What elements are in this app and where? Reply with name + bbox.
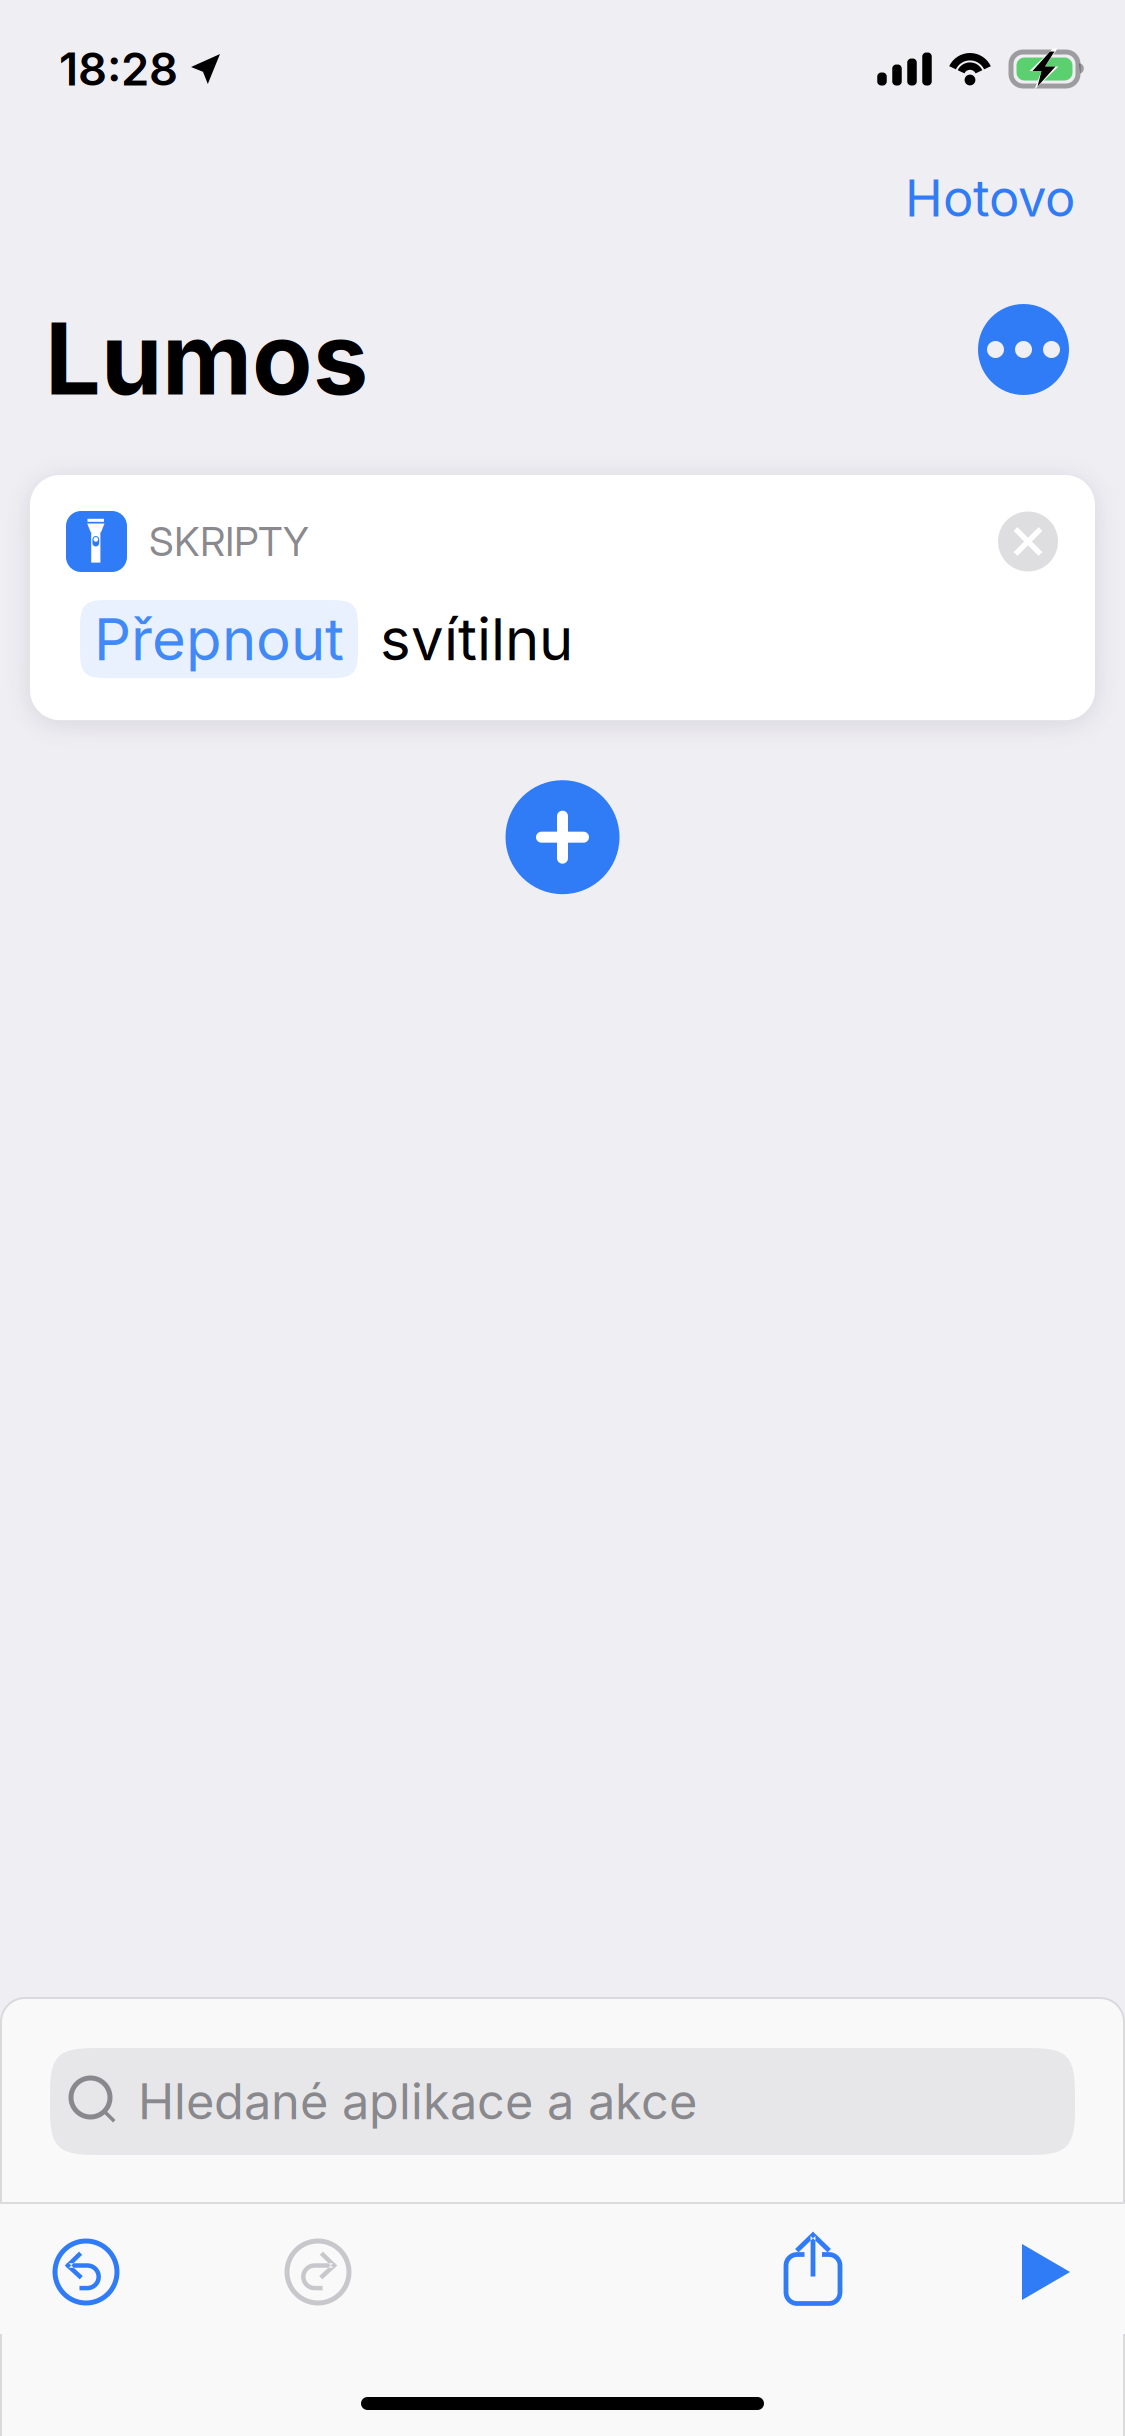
button[interactable]: Add action xyxy=(505,780,619,894)
button[interactable]: Undo xyxy=(55,2241,117,2303)
button[interactable]: Remove action xyxy=(998,511,1058,571)
staticText: SKRIPTY xyxy=(149,517,309,566)
button[interactable]: Redo xyxy=(287,2241,349,2303)
button[interactable]: Share xyxy=(783,2232,842,2310)
button[interactable]: Hotovo xyxy=(880,135,1100,241)
staticText: Lumos xyxy=(45,299,368,418)
staticText: svítilnu xyxy=(380,604,573,674)
staticText: Hotovo xyxy=(905,167,1075,229)
button[interactable]: More options xyxy=(978,304,1069,395)
staticText: Přepnout xyxy=(94,604,344,674)
button[interactable]: Run xyxy=(1021,2243,1071,2301)
staticText: Hledané aplikace a akce xyxy=(138,2072,697,2131)
staticText: 18:28 xyxy=(59,42,178,96)
